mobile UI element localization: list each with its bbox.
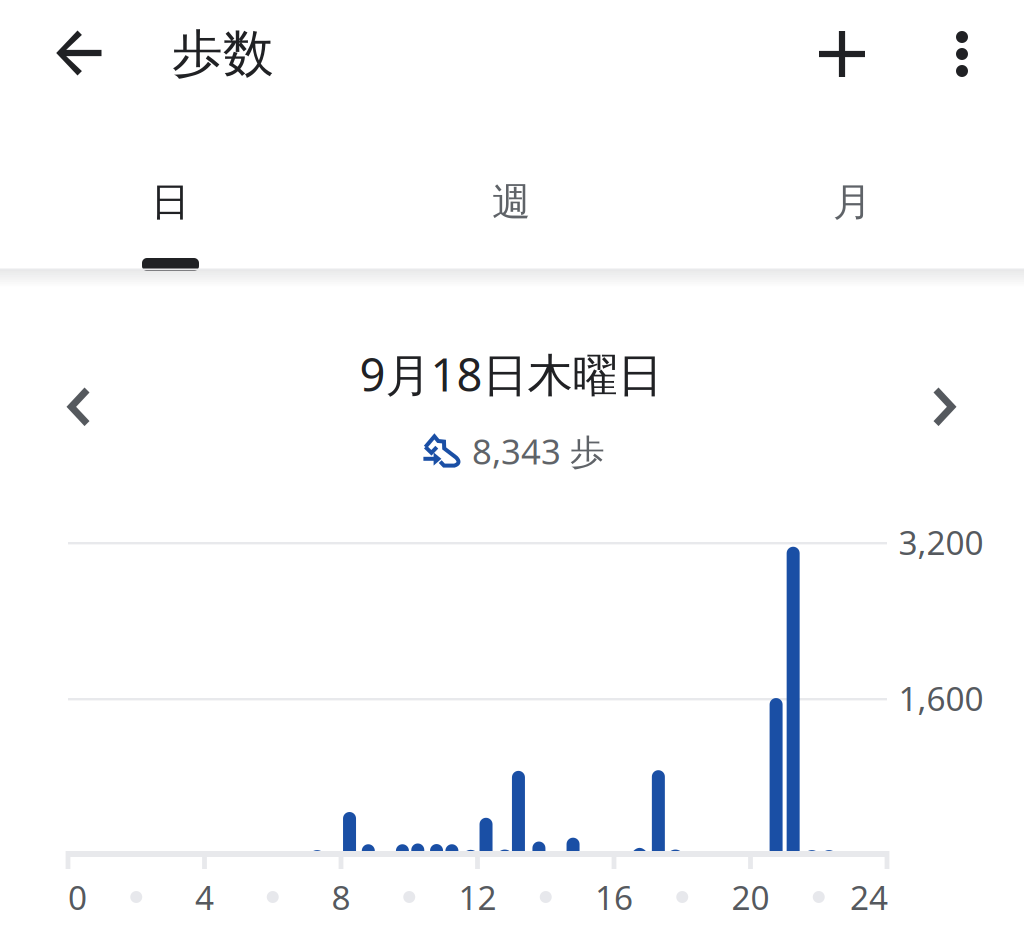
button[interactable]: Add: [819, 31, 865, 77]
staticText: 12: [458, 875, 496, 919]
staticText: 16: [595, 875, 633, 919]
button[interactable]: 日: [0, 109, 341, 271]
button[interactable]: More options: [956, 31, 968, 77]
staticText: 月: [833, 178, 872, 226]
button[interactable]: 週: [341, 109, 682, 271]
button[interactable]: Previous day: [66, 387, 89, 426]
button[interactable]: Next day: [933, 387, 956, 426]
staticText: 24: [850, 875, 888, 919]
staticText: 20: [731, 875, 769, 919]
staticText: 4: [195, 875, 214, 919]
staticText: 8: [331, 875, 350, 919]
staticText: 0: [68, 875, 87, 919]
button[interactable]: 月: [682, 109, 1023, 271]
staticText: 3,200: [898, 520, 983, 564]
staticText: 1,600: [898, 676, 983, 720]
button[interactable]: Back: [56, 30, 101, 75]
staticText: 8,343 歩: [472, 428, 605, 474]
staticText: 9月18日木曜日: [359, 344, 662, 404]
staticText: 歩数: [172, 23, 274, 85]
staticText: 週: [492, 178, 531, 226]
staticText: 日: [151, 178, 190, 226]
